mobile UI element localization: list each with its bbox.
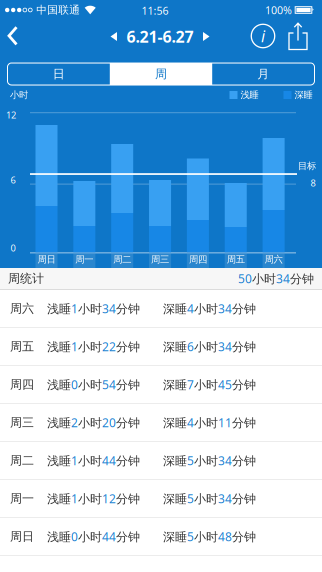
staticText: 深睡4小时11分钟	[163, 414, 256, 430]
staticText: i	[261, 25, 265, 47]
staticText: 50小时34分钟	[238, 270, 314, 286]
button[interactable]: Info	[246, 20, 280, 52]
staticText: 月	[257, 67, 269, 81]
staticText: 周一	[10, 491, 34, 506]
staticText: 周一	[75, 254, 93, 265]
staticText: 深睡6小时34分钟	[163, 338, 256, 354]
staticText: 周三	[10, 415, 34, 430]
staticText: 浅睡0小时54分钟	[47, 376, 140, 392]
staticText: 周	[155, 67, 167, 81]
staticText: 深睡4小时34分钟	[163, 300, 256, 316]
staticText: 中国联通	[36, 3, 80, 16]
staticText: 深睡5小时34分钟	[163, 490, 256, 506]
button[interactable]: Next week	[202, 32, 209, 41]
staticText: 日	[53, 67, 65, 81]
staticText: 周日	[10, 529, 34, 544]
staticText: 周五	[227, 254, 245, 265]
staticText: 浅睡1小时12分钟	[47, 490, 140, 506]
staticText: 0	[10, 242, 15, 254]
staticText: 11:56	[141, 3, 168, 18]
staticText: 深睡5小时34分钟	[163, 452, 256, 468]
staticText: 8	[310, 177, 315, 189]
staticText: 100%	[265, 3, 292, 17]
staticText: 周六	[10, 301, 34, 316]
staticText: 浅睡	[240, 89, 258, 101]
staticText: 周五	[10, 339, 34, 354]
button[interactable]: Previous week	[110, 32, 117, 41]
button[interactable]: 日	[7, 63, 110, 85]
staticText: 浅睡1小时22分钟	[47, 338, 140, 354]
staticText: 周统计	[8, 271, 44, 286]
staticText: 深睡7小时45分钟	[163, 376, 256, 392]
staticText: 小时	[10, 89, 28, 101]
staticText: 周二	[10, 453, 34, 468]
staticText: 浅睡2小时20分钟	[47, 414, 140, 430]
staticText: 浅睡1小时34分钟	[47, 300, 140, 316]
button[interactable]: Back	[0, 20, 28, 52]
staticText: 深睡	[294, 89, 312, 101]
button[interactable]: 月	[212, 63, 314, 85]
staticText: 浅睡1小时44分钟	[47, 452, 140, 468]
staticText: 6	[10, 174, 15, 186]
staticText: 12	[6, 109, 16, 121]
staticText: 周三	[151, 254, 169, 265]
staticText: 深睡5小时48分钟	[163, 528, 256, 544]
staticText: 周四	[189, 254, 207, 265]
staticText: 周日	[37, 254, 55, 265]
staticText: 目标	[298, 160, 316, 172]
staticText: 周六	[265, 254, 283, 265]
button[interactable]: Share	[280, 20, 312, 52]
staticText: 周四	[10, 377, 34, 392]
staticText: 周二	[113, 254, 131, 265]
button[interactable]: 周	[110, 63, 212, 85]
staticText: 6.21-6.27	[126, 26, 193, 47]
staticText: 浅睡0小时44分钟	[47, 528, 140, 544]
